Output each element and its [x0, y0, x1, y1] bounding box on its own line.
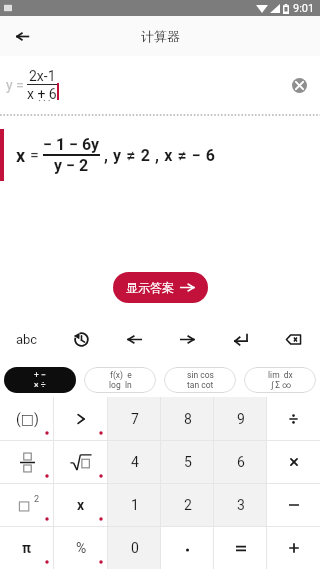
staticText: − 1 − 6y [43, 135, 100, 154]
staticText: 1 [131, 497, 139, 513]
button[interactable]: sin cos [164, 367, 236, 393]
button[interactable] [267, 484, 320, 526]
button[interactable] [267, 527, 320, 569]
staticText: f(x) e [110, 370, 132, 380]
staticText: % [76, 540, 87, 556]
staticText: 9:01 [293, 2, 315, 15]
button[interactable]: 3 [214, 484, 267, 526]
button[interactable]: (□) [0, 397, 54, 440]
button[interactable]: abc [0, 316, 54, 363]
button[interactable]: 7 [108, 397, 161, 440]
staticText: 3 [237, 497, 245, 513]
button[interactable]: 9 [214, 397, 267, 440]
button[interactable] [54, 441, 108, 483]
staticText: = [30, 146, 39, 165]
staticText: 计算器 [141, 28, 180, 44]
staticText: x + 6 [27, 86, 57, 102]
staticText: 显示答案 [126, 280, 174, 295]
button[interactable]: Move left [108, 316, 161, 363]
button[interactable] [54, 397, 108, 440]
staticText: 2 [34, 494, 40, 505]
button[interactable]: 0 [108, 527, 161, 569]
button[interactable]: f(x) e [84, 367, 156, 393]
button[interactable]: History [54, 316, 108, 363]
staticText: , y ≠ 2 , x ≠ − 6 [104, 146, 216, 165]
staticText: ∫ Σ ∞ [271, 380, 291, 390]
staticText: y = [6, 77, 24, 93]
staticText: tan cot [187, 380, 214, 390]
button[interactable]: Enter [214, 316, 267, 363]
button[interactable]: 5 [161, 441, 214, 483]
button[interactable]: Back [0, 16, 40, 56]
button[interactable] [161, 527, 214, 569]
staticText: lim dx [268, 370, 293, 380]
button[interactable]: 4 [108, 441, 161, 483]
button[interactable]: Backspace [267, 316, 320, 363]
staticText: × ÷ [34, 380, 46, 390]
button[interactable]: π [0, 527, 54, 569]
button[interactable] [267, 441, 320, 483]
staticText: y − 2 [54, 156, 89, 175]
button[interactable]: 显示答案 [113, 272, 208, 303]
staticText: log ln [109, 380, 132, 390]
button[interactable] [267, 397, 320, 440]
button[interactable]: Move right [161, 316, 214, 363]
staticText: 9 [237, 411, 245, 427]
button[interactable]: 2 [0, 484, 54, 526]
staticText: π [22, 540, 32, 556]
staticText: + − [34, 370, 46, 380]
button[interactable] [0, 441, 54, 483]
staticText: 7 [131, 411, 139, 427]
staticText: 8 [184, 411, 192, 427]
staticText: sin cos [187, 370, 214, 380]
staticText: (□) [16, 411, 39, 427]
button[interactable]: 1 [108, 484, 161, 526]
button[interactable]: + − [4, 367, 76, 393]
staticText: 6 [237, 454, 245, 470]
staticText: x [16, 145, 26, 166]
staticText: 2 [184, 497, 192, 513]
button[interactable]: x [54, 484, 108, 526]
button[interactable]: lim dx [244, 367, 316, 393]
button[interactable]: Clear [286, 72, 312, 98]
button[interactable]: 8 [161, 397, 214, 440]
staticText: 0 [131, 540, 139, 556]
staticText: 2x-1 [29, 68, 56, 84]
button[interactable]: % [54, 527, 108, 569]
staticText: 5 [184, 454, 192, 470]
button[interactable]: 6 [214, 441, 267, 483]
button[interactable] [214, 527, 267, 569]
button[interactable]: 2 [161, 484, 214, 526]
staticText: x [77, 497, 85, 513]
staticText: abc [16, 332, 38, 347]
staticText: 4 [131, 454, 139, 470]
